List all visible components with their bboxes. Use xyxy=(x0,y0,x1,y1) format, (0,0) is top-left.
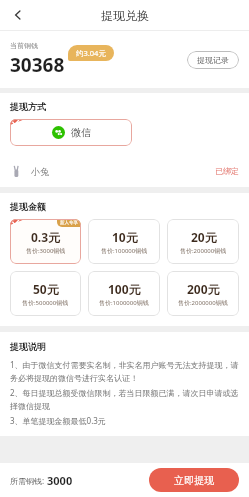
button[interactable]: 立即提现 xyxy=(149,468,239,492)
staticText: 200元 xyxy=(187,281,220,297)
staticText: 提现说明 xyxy=(10,341,46,352)
staticText: 3000 xyxy=(47,473,73,488)
staticText: 售价:100000铜钱 xyxy=(101,247,148,255)
staticText: 微信 xyxy=(71,126,91,139)
staticText: 提现方式 xyxy=(10,101,46,112)
button[interactable]: 200元 xyxy=(167,271,239,316)
staticText: 10元 xyxy=(112,229,138,245)
staticText: 100元 xyxy=(108,281,141,297)
button[interactable]: 100元 xyxy=(88,271,160,316)
button[interactable]: 20元 xyxy=(167,219,239,264)
button[interactable]: 提现记录 xyxy=(187,51,239,69)
staticText: 立即提现 xyxy=(174,474,214,487)
button[interactable]: 10元 xyxy=(88,219,160,264)
button[interactable]: 50元 xyxy=(10,271,81,316)
button[interactable]: 微信 xyxy=(10,119,132,146)
staticText: 1、由于微信支付需要实名制，非实名用户账号无法支持提现，请务必将提现的微信号进行… xyxy=(10,359,239,383)
staticText: 小兔 xyxy=(31,166,49,177)
staticText: 提现兑换 xyxy=(101,8,149,23)
staticText: 2、每日提现总额受微信限制，若当日限额已满，请次日申请或选择微信提现 xyxy=(10,387,239,411)
staticText: 3、单笔提现金额最低0.3元 xyxy=(10,415,106,426)
button[interactable]: Back xyxy=(4,1,32,29)
staticText: 约3.04元 xyxy=(76,48,106,58)
staticText: 当前铜钱 xyxy=(10,41,38,50)
button[interactable]: 0.3元 xyxy=(10,219,81,264)
staticText: 售价:1000000铜钱 xyxy=(99,299,149,307)
staticText: 售价:3000铜钱 xyxy=(26,247,66,255)
staticText: 售价:2000000铜钱 xyxy=(178,299,228,307)
staticText: 20元 xyxy=(191,229,217,245)
staticText: 售价:500000铜钱 xyxy=(22,299,69,307)
staticText: 已绑定 xyxy=(215,166,239,176)
staticText: 50元 xyxy=(33,281,59,297)
staticText: 新人专享 xyxy=(60,220,78,226)
staticText: 30368 xyxy=(10,52,65,78)
staticText: 0.3元 xyxy=(31,229,61,245)
staticText: 售价:200000铜钱 xyxy=(180,247,227,255)
button[interactable]: 小兔 xyxy=(10,157,239,185)
staticText: 所需铜钱: xyxy=(10,475,47,486)
staticText: 提现金额 xyxy=(10,201,46,212)
staticText: 提现记录 xyxy=(197,55,229,65)
